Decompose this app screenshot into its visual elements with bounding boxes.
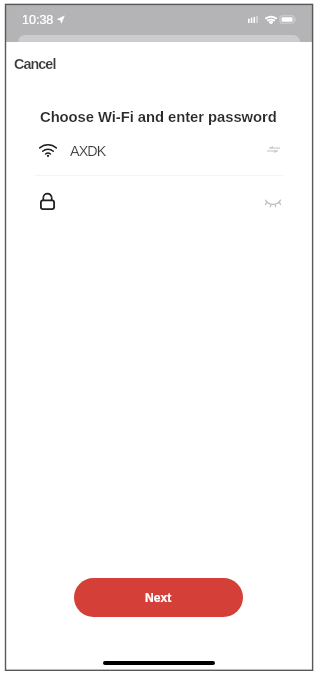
button[interactable]	[5, 174, 313, 211]
button[interactable]: AXDK	[5, 136, 313, 173]
staticText: 10:38	[22, 13, 54, 27]
button[interactable]: Next	[74, 578, 243, 617]
button[interactable]: Change Wi-Fi network	[261, 141, 284, 159]
button[interactable]: Show password	[261, 193, 284, 211]
staticText: Choose Wi-Fi and enter password	[40, 109, 277, 126]
staticText: Cancel	[14, 56, 56, 72]
button[interactable]: Cancel	[5, 52, 75, 76]
staticText: Next	[145, 591, 172, 605]
staticText: AXDK	[70, 143, 106, 159]
